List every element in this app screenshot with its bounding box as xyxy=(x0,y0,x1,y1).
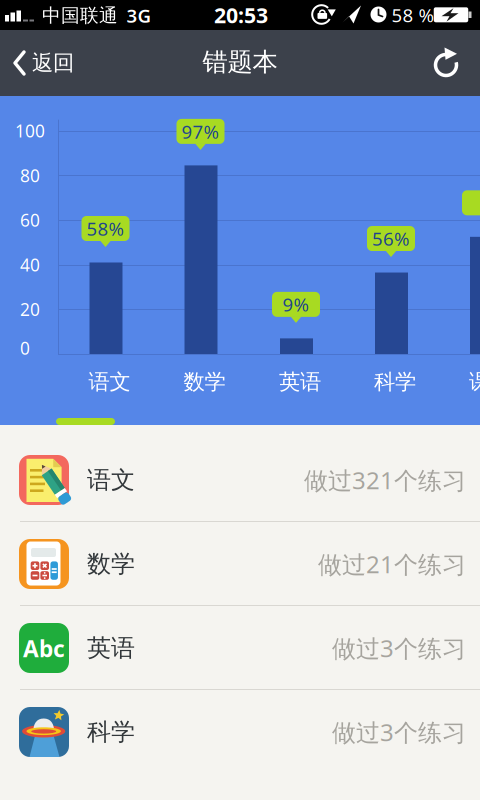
staticText: 英语 xyxy=(279,369,321,395)
staticText: 语文 xyxy=(87,465,135,495)
staticText: 97% xyxy=(181,119,219,144)
staticText: 58% xyxy=(86,216,124,241)
staticText: 科学 xyxy=(87,717,135,747)
staticText: 做过3个练习 xyxy=(332,632,466,664)
staticText: 做过3个练习 xyxy=(332,716,466,748)
staticText: 语文 xyxy=(88,369,130,395)
staticText: 80 xyxy=(20,164,40,187)
staticText: 0 xyxy=(20,336,30,359)
button[interactable]: 刷新 xyxy=(423,30,469,96)
button[interactable]: 语文 xyxy=(0,438,480,521)
staticText: 错题本 xyxy=(202,46,277,77)
button[interactable]: 数学 xyxy=(0,522,480,605)
staticText: 40 xyxy=(20,253,40,276)
staticText: 返回 xyxy=(32,50,74,76)
staticText: 56% xyxy=(372,226,410,251)
staticText: 课外 xyxy=(469,369,480,395)
staticText: Abc xyxy=(23,633,65,663)
staticText: 中国联通 xyxy=(42,4,118,27)
staticText: 60 xyxy=(20,209,40,232)
staticText: 数学 xyxy=(87,549,135,579)
staticText: 9% xyxy=(282,292,309,317)
staticText: 做过21个练习 xyxy=(318,548,466,580)
button[interactable]: Abc xyxy=(0,606,480,689)
staticText: 英语 xyxy=(87,633,135,663)
staticText: 58 % xyxy=(391,3,434,27)
staticText: 数学 xyxy=(183,369,225,395)
button[interactable]: 科学 xyxy=(0,690,480,773)
staticText: 做过321个练习 xyxy=(304,464,466,496)
staticText: 科学 xyxy=(374,369,416,395)
staticText: 100 xyxy=(15,119,45,142)
button[interactable]: 返回 xyxy=(0,30,90,96)
staticText: 3G xyxy=(126,3,151,28)
staticText: 20:53 xyxy=(214,1,268,29)
staticText: 20 xyxy=(20,298,40,321)
